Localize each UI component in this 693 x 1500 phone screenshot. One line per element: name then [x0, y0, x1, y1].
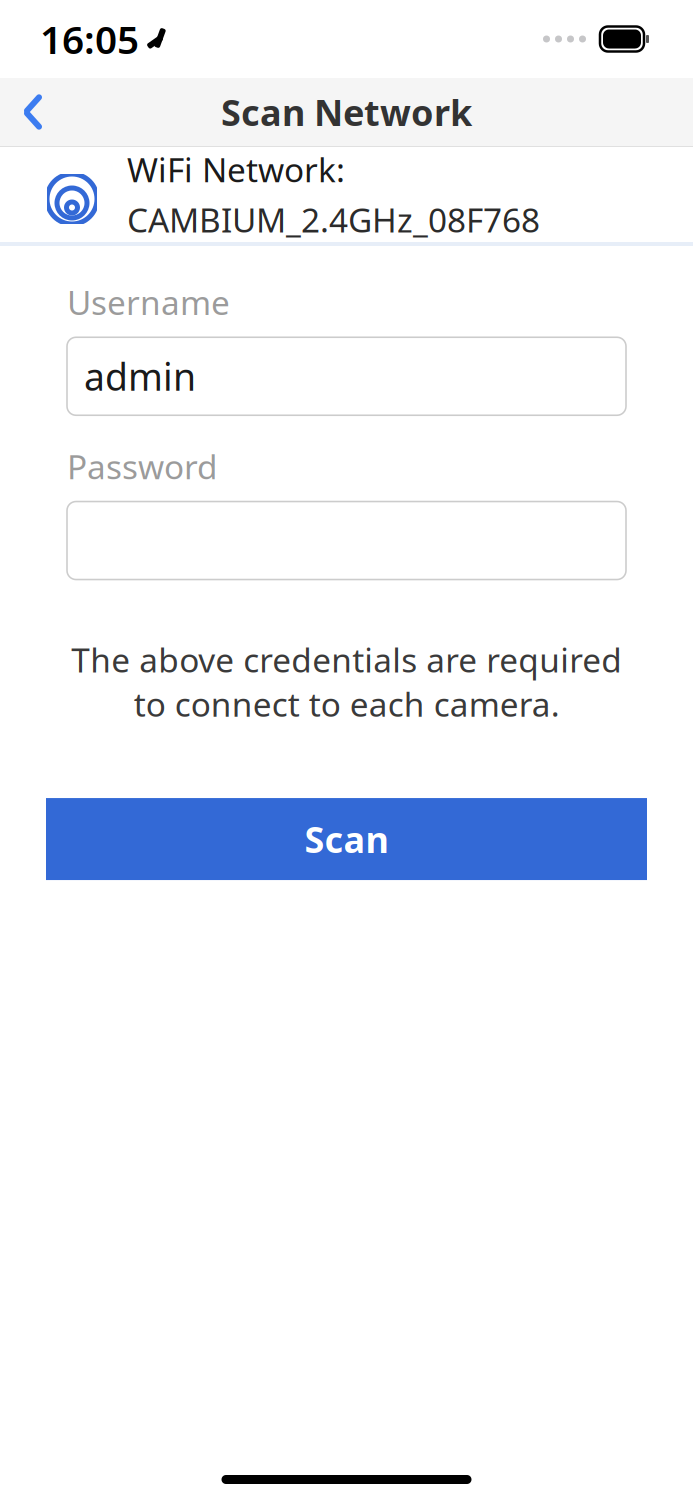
staticText: The above credentials are required to co… — [71, 637, 622, 726]
staticText: Scan Network — [221, 88, 472, 136]
staticText: Password — [67, 444, 218, 489]
button[interactable]: Back — [0, 79, 66, 145]
staticText: admin — [84, 351, 196, 401]
staticText: CAMBIUM_2.4GHz_08F768 — [127, 197, 540, 242]
staticText: Scan — [304, 815, 388, 863]
button[interactable]: Scan — [46, 798, 647, 880]
staticText: 16:05 — [40, 13, 139, 65]
staticText: Username — [67, 280, 230, 324]
staticText: WiFi Network: — [127, 147, 345, 191]
